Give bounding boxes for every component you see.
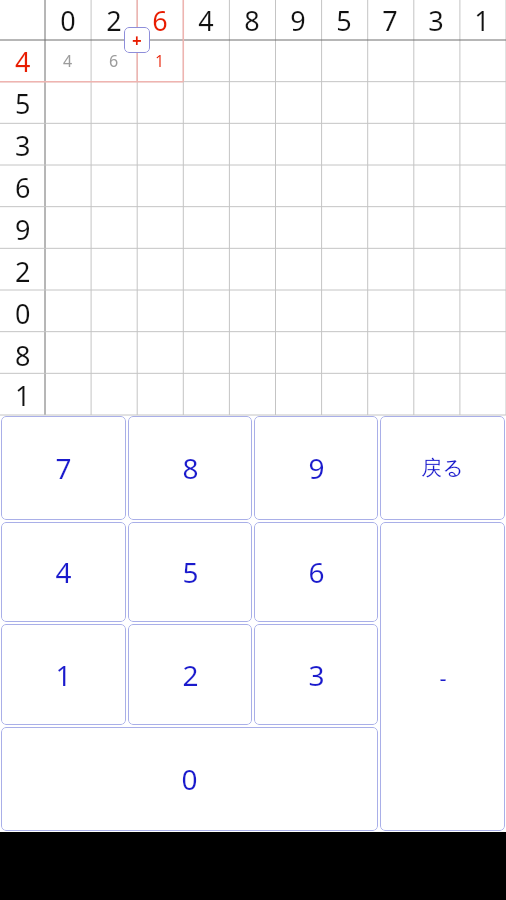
staticText: 5: [15, 85, 31, 122]
button[interactable]: 2: [0, 250, 45, 292]
staticText: 3: [15, 127, 31, 164]
button[interactable]: 5: [321, 0, 367, 40]
staticText: 6: [15, 169, 31, 206]
staticText: 7: [55, 449, 72, 487]
staticText: +: [132, 29, 142, 52]
staticText: 9: [15, 211, 31, 248]
staticText: 6: [308, 553, 325, 591]
button[interactable]: 1: [459, 0, 505, 40]
button[interactable]: 0: [45, 0, 91, 40]
staticText: 2: [182, 656, 199, 694]
staticText: 4: [55, 553, 72, 591]
staticText: 8: [182, 449, 199, 487]
button[interactable]: 5: [0, 82, 45, 124]
staticText: 8: [15, 337, 31, 374]
staticText: 7: [382, 2, 398, 39]
staticText: 0: [60, 2, 76, 39]
staticText: 1: [474, 2, 490, 39]
button[interactable]: 戻る: [380, 416, 505, 520]
button[interactable]: 3: [254, 624, 378, 725]
button[interactable]: 4: [183, 0, 229, 40]
button[interactable]: Carry plus: [124, 27, 150, 53]
staticText: 0: [181, 760, 198, 798]
staticText: 4: [63, 50, 73, 72]
staticText: 9: [290, 2, 306, 39]
button[interactable]: 8: [229, 0, 275, 40]
button[interactable]: 9: [275, 0, 321, 40]
button[interactable]: 0: [1, 727, 378, 831]
button[interactable]: 8: [0, 334, 45, 376]
staticText: 1: [155, 50, 165, 72]
staticText: 0: [15, 295, 31, 332]
button[interactable]: 8: [128, 416, 252, 520]
staticText: 6: [152, 2, 168, 39]
staticText: 3: [428, 2, 444, 39]
staticText: 2: [106, 2, 122, 39]
button[interactable]: 0: [0, 292, 45, 334]
staticText: 4: [198, 2, 214, 39]
staticText: 5: [182, 553, 199, 591]
button[interactable]: 6: [91, 40, 137, 82]
button[interactable]: 2: [128, 624, 252, 725]
staticText: 9: [308, 449, 325, 487]
button[interactable]: 4: [45, 40, 91, 82]
button[interactable]: 9: [0, 208, 45, 250]
button[interactable]: 6: [0, 166, 45, 208]
button[interactable]: 7: [367, 0, 413, 40]
button[interactable]: 9: [254, 416, 378, 520]
staticText: 1: [15, 377, 31, 414]
staticText: -: [439, 662, 447, 692]
button[interactable]: 7: [1, 416, 126, 520]
staticText: 2: [15, 253, 31, 290]
button[interactable]: -: [380, 522, 505, 831]
button[interactable]: 3: [0, 124, 45, 166]
staticText: 3: [308, 656, 325, 694]
button[interactable]: 4: [0, 40, 45, 82]
button[interactable]: 6: [254, 522, 378, 622]
staticText: 6: [109, 50, 119, 72]
button[interactable]: 1: [1, 624, 126, 725]
button[interactable]: 3: [413, 0, 459, 40]
button[interactable]: 6: [137, 0, 183, 40]
button[interactable]: 4: [1, 522, 126, 622]
button[interactable]: 2: [91, 0, 137, 40]
button[interactable]: 1: [0, 376, 45, 415]
button[interactable]: 1: [137, 40, 183, 82]
staticText: 4: [15, 43, 31, 80]
staticText: 5: [336, 2, 352, 39]
staticText: 1: [55, 656, 72, 694]
button[interactable]: 5: [128, 522, 252, 622]
staticText: 戻る: [421, 455, 464, 481]
staticText: 8: [244, 2, 260, 39]
